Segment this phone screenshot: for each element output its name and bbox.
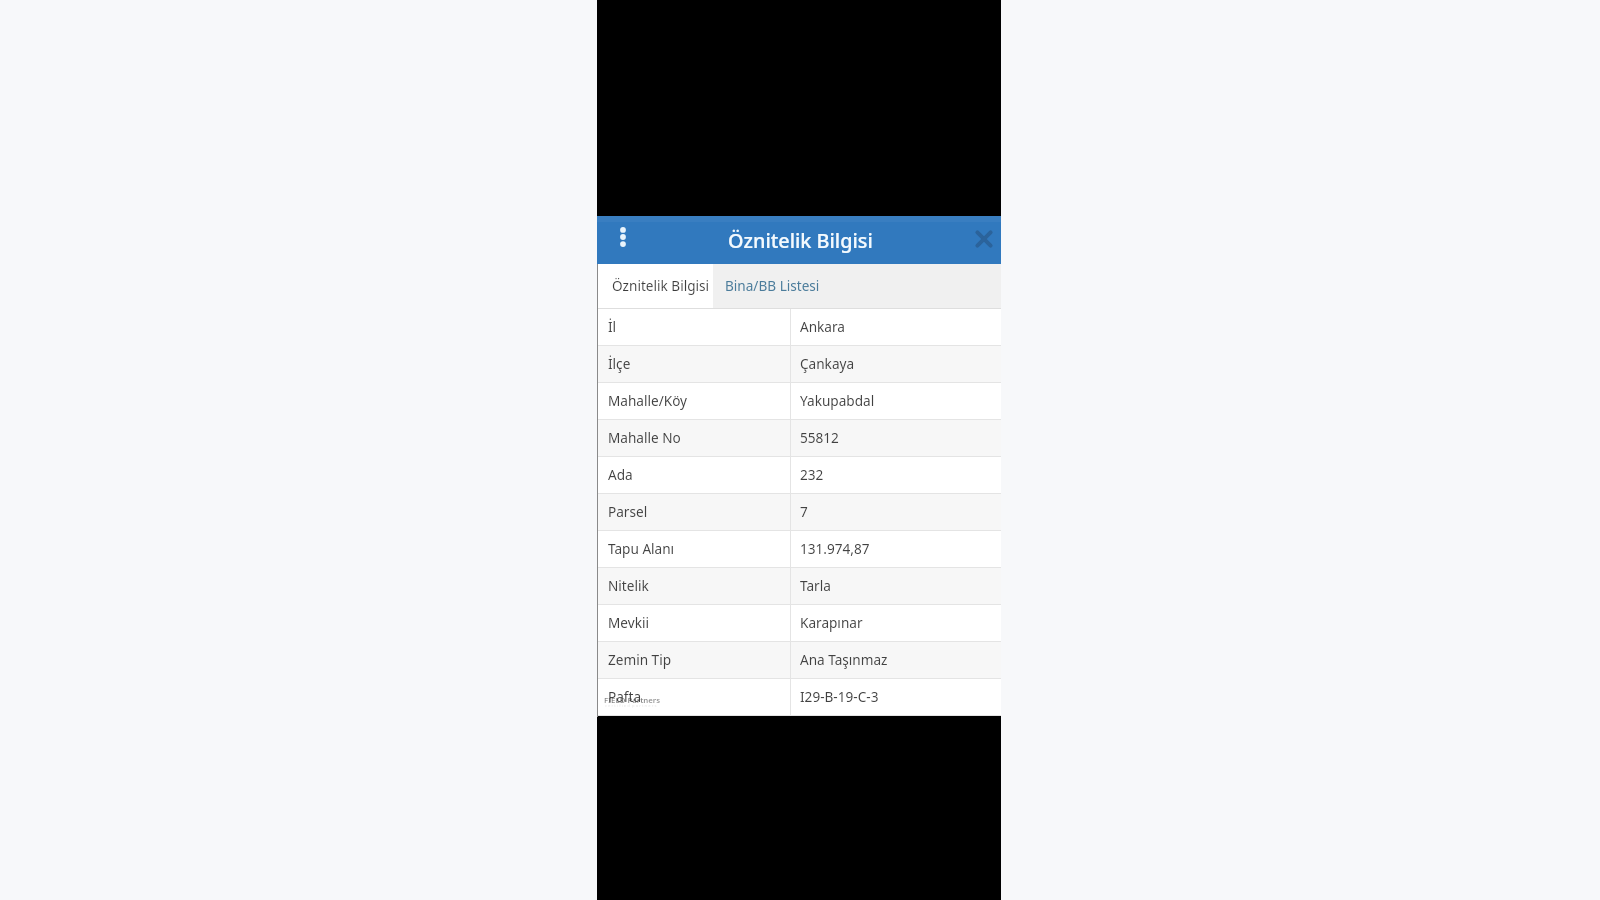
staticText: Öznitelik Bilgisi xyxy=(728,227,873,254)
button[interactable]: Close xyxy=(972,227,996,251)
staticText: Karapınar xyxy=(800,613,863,632)
staticText: 232 xyxy=(800,465,824,484)
button[interactable]: Öznitelik Bilgisi xyxy=(597,264,713,309)
staticText: Tarla xyxy=(800,576,831,595)
staticText: Nitelik xyxy=(608,576,649,595)
button[interactable]: Ada xyxy=(597,457,1001,494)
staticText: I29-B-19-C-3 xyxy=(800,687,879,706)
staticText: FIELD Partners xyxy=(604,695,661,706)
staticText: Mahalle/Köy xyxy=(608,391,688,410)
staticText: Zemin Tip xyxy=(608,650,672,669)
button[interactable]: İlçe xyxy=(597,346,1001,383)
staticText: 7 xyxy=(800,502,808,521)
staticText: Ana Taşınmaz xyxy=(800,650,888,669)
button[interactable]: Tapu Alanı xyxy=(597,531,1001,568)
button[interactable]: Nitelik xyxy=(597,568,1001,605)
staticText: Pafta xyxy=(608,687,642,706)
button[interactable]: Mevkii xyxy=(597,605,1001,642)
button[interactable]: Parsel xyxy=(597,494,1001,531)
staticText: İl xyxy=(608,317,617,336)
button[interactable]: Mahalle No xyxy=(597,420,1001,457)
staticText: 55812 xyxy=(800,428,839,447)
staticText: Mahalle No xyxy=(608,428,681,447)
staticText: Ankara xyxy=(800,317,845,336)
staticText: Parsel xyxy=(608,502,648,521)
button[interactable]: Bina/BB Listesi xyxy=(713,264,833,309)
staticText: c e r t i f i e d p a r t n e r s xyxy=(605,703,657,709)
staticText: Yakupabdal xyxy=(800,391,875,410)
button[interactable]: Pafta xyxy=(597,679,1001,716)
staticText: Tapu Alanı xyxy=(608,539,675,558)
staticText: Mevkii xyxy=(608,613,649,632)
staticText: Çankaya xyxy=(800,354,855,373)
button[interactable]: More options xyxy=(611,225,635,249)
button[interactable]: Zemin Tip xyxy=(597,642,1001,679)
staticText: Öznitelik Bilgisi xyxy=(612,276,710,295)
staticText: Ada xyxy=(608,465,633,484)
staticText: Bina/BB Listesi xyxy=(725,276,820,295)
button[interactable]: Mahalle/Köy xyxy=(597,383,1001,420)
staticText: 131.974,87 xyxy=(800,539,870,558)
staticText: İlçe xyxy=(608,354,631,373)
button[interactable]: İl xyxy=(597,309,1001,346)
